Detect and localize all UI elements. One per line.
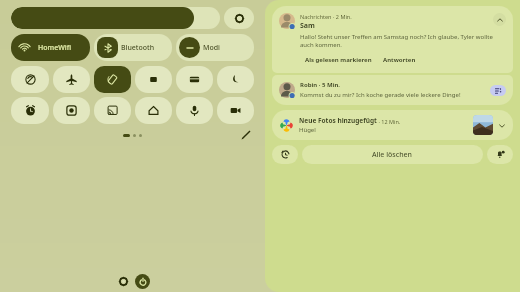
button[interactable]: Wallet — [176, 66, 213, 93]
button[interactable]: Als gelesen markieren — [304, 56, 373, 64]
staticText: Robin · 5 Min. — [300, 81, 341, 89]
button[interactable]: Bluetooth — [94, 34, 172, 61]
button[interactable]: Notification history — [272, 145, 298, 164]
button[interactable]: Home — [135, 97, 172, 124]
button[interactable]: Alarm — [11, 97, 49, 124]
button[interactable]: Brightness settings — [224, 7, 254, 29]
staticText: Hügel — [299, 126, 316, 134]
button[interactable]: Nachrichten · 2 Min. — [272, 6, 513, 73]
button[interactable]: Neue Fotos hinzugefügt — [272, 110, 513, 140]
staticText: Modi — [203, 43, 220, 53]
button[interactable]: Screen record — [53, 97, 90, 124]
button[interactable]: Data Saver — [11, 66, 49, 93]
staticText: HomeWifi — [38, 43, 72, 53]
button[interactable]: Cast — [94, 97, 131, 124]
staticText: Neue Fotos hinzugefügt — [299, 116, 377, 125]
staticText: Bluetooth — [121, 43, 155, 53]
staticText: Kommst du zu mir? Ich koche gerade viele… — [300, 91, 461, 99]
staticText: · 12 Min. — [377, 118, 401, 125]
button[interactable]: Antworten — [382, 56, 417, 64]
button[interactable]: Auto-rotate — [94, 66, 131, 93]
staticText: Antworten — [383, 56, 416, 64]
button[interactable]: Power — [135, 274, 150, 289]
button[interactable]: Camera — [217, 97, 254, 124]
button[interactable]: Alle löschen — [302, 145, 483, 164]
staticText: Sam — [300, 21, 315, 31]
staticText: Alle löschen — [372, 150, 413, 160]
staticText: Als gelesen markieren — [305, 56, 372, 64]
button[interactable]: Notification settings — [487, 145, 513, 164]
button[interactable]: HomeWifi — [11, 34, 90, 61]
button[interactable]: Collapse — [493, 13, 506, 26]
button[interactable]: Dark theme — [217, 66, 254, 93]
button[interactable]: Flight mode — [53, 66, 90, 93]
button[interactable]: Settings — [116, 274, 131, 289]
staticText: Nachrichten · 2 Min. — [300, 13, 352, 20]
button[interactable]: Modi — [176, 34, 254, 61]
button[interactable]: Flashlight — [135, 66, 172, 93]
staticText: Hallo! Steht unser Treffen am Samstag no… — [300, 33, 493, 49]
button[interactable]: Brightness — [11, 7, 220, 29]
button[interactable]: Expand — [495, 119, 508, 132]
button[interactable]: Robin · 5 Min. — [272, 75, 513, 105]
button[interactable]: Microphone — [176, 97, 213, 124]
button[interactable]: Edit tiles — [237, 126, 255, 144]
button[interactable]: Smart reply — [490, 85, 506, 96]
